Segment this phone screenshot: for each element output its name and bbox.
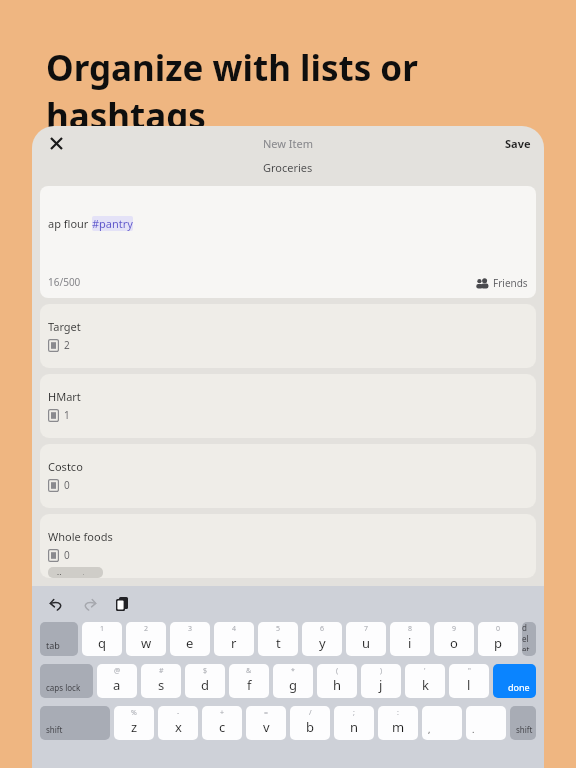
button[interactable]: @ (97, 664, 137, 698)
staticText: New Item (263, 136, 314, 151)
staticText: Save (505, 136, 531, 151)
staticText: s (158, 676, 165, 694)
button[interactable]: 7 (346, 622, 386, 656)
button[interactable]: 3 (170, 622, 210, 656)
staticText: m (392, 718, 405, 736)
button[interactable]: 1 (82, 622, 122, 656)
staticText: $ (203, 666, 208, 676)
button[interactable]: ' (405, 664, 445, 698)
staticText: # (159, 666, 164, 676)
button[interactable]: % (114, 706, 154, 740)
staticText: HMart (48, 389, 81, 404)
button[interactable]: 0 (478, 622, 518, 656)
button[interactable]: - (158, 706, 198, 740)
button[interactable]: . (466, 706, 506, 740)
staticText: 0 (496, 624, 501, 634)
staticText: 0 (64, 548, 70, 562)
staticText: t (276, 634, 281, 652)
staticText: shift (516, 724, 533, 735)
staticText: Target (48, 319, 81, 334)
button[interactable]: , (422, 706, 462, 740)
staticText: ' (424, 666, 426, 676)
staticText: , (428, 723, 431, 735)
button[interactable]: ; (334, 706, 374, 740)
staticText: e (186, 634, 194, 652)
button[interactable]: & (229, 664, 269, 698)
staticText: h (333, 676, 342, 694)
staticText: 9 (452, 624, 457, 634)
button[interactable]: #pantry (48, 567, 103, 578)
staticText: a (113, 676, 121, 694)
button[interactable]: tab (40, 622, 78, 656)
staticText: 0 (64, 478, 70, 492)
button[interactable]: + (202, 706, 242, 740)
button[interactable]: 6 (302, 622, 342, 656)
button[interactable]: Friends (476, 276, 528, 290)
staticText: v (263, 718, 270, 736)
button[interactable]: 4 (214, 622, 254, 656)
staticText: Whole foods (48, 529, 113, 544)
staticText: ; (353, 708, 355, 718)
staticText: % (131, 708, 137, 718)
button[interactable]: $ (185, 664, 225, 698)
staticText: 2 (64, 338, 70, 352)
button[interactable]: delete (522, 622, 536, 656)
staticText: l (467, 676, 471, 694)
button[interactable]: * (273, 664, 313, 698)
button[interactable]: 5 (258, 622, 298, 656)
staticText: q (98, 634, 106, 652)
button[interactable]: caps lock (40, 664, 93, 698)
staticText: n (350, 718, 359, 736)
button[interactable]: Close (42, 129, 70, 157)
button[interactable]: Redo (78, 593, 100, 615)
staticText: 3 (188, 624, 193, 634)
staticText: shift (46, 724, 63, 735)
staticText: #pantry (55, 570, 96, 575)
staticText: 8 (408, 624, 413, 634)
button[interactable]: ap flour (40, 186, 536, 298)
button[interactable]: 2 (126, 622, 166, 656)
button[interactable]: shift (510, 706, 536, 740)
button[interactable]: done (493, 664, 536, 698)
button[interactable]: Paste (112, 593, 134, 615)
staticText: ap flour (48, 216, 92, 231)
staticText: 1 (100, 624, 105, 634)
button[interactable]: Target (40, 304, 536, 368)
staticText: 4 (232, 624, 237, 634)
staticText: 1 (64, 408, 70, 422)
staticText: Friends (493, 276, 528, 290)
staticText: Organize with lists or hashtags (46, 44, 576, 140)
button[interactable]: ) (361, 664, 401, 698)
button[interactable]: 9 (434, 622, 474, 656)
staticText: 6 (320, 624, 325, 634)
button[interactable]: = (246, 706, 286, 740)
staticText: / (309, 708, 312, 718)
button[interactable]: 8 (390, 622, 430, 656)
staticText: z (131, 718, 138, 736)
staticText: caps lock (46, 682, 81, 693)
button[interactable]: HMart (40, 374, 536, 438)
button[interactable]: shift (40, 706, 110, 740)
staticText: tab (46, 639, 60, 651)
staticText: #pantry (92, 216, 133, 231)
staticText: g (289, 676, 297, 694)
button[interactable]: ( (317, 664, 357, 698)
staticText: done (508, 681, 530, 693)
staticText: * (291, 666, 295, 676)
button[interactable]: : (378, 706, 418, 740)
staticText: j (379, 676, 383, 694)
button[interactable]: Costco (40, 444, 536, 508)
staticText: : (397, 708, 399, 718)
staticText: f (247, 676, 252, 694)
staticText: ( (336, 666, 339, 676)
button[interactable]: # (141, 664, 181, 698)
staticText: u (362, 634, 371, 652)
staticText: x (175, 718, 182, 736)
staticText: w (141, 634, 152, 652)
button[interactable]: Save (492, 130, 544, 157)
button[interactable]: " (449, 664, 489, 698)
button[interactable]: Whole foods (40, 514, 536, 578)
staticText: 5 (276, 624, 281, 634)
button[interactable]: / (290, 706, 330, 740)
button[interactable]: Undo (46, 593, 68, 615)
